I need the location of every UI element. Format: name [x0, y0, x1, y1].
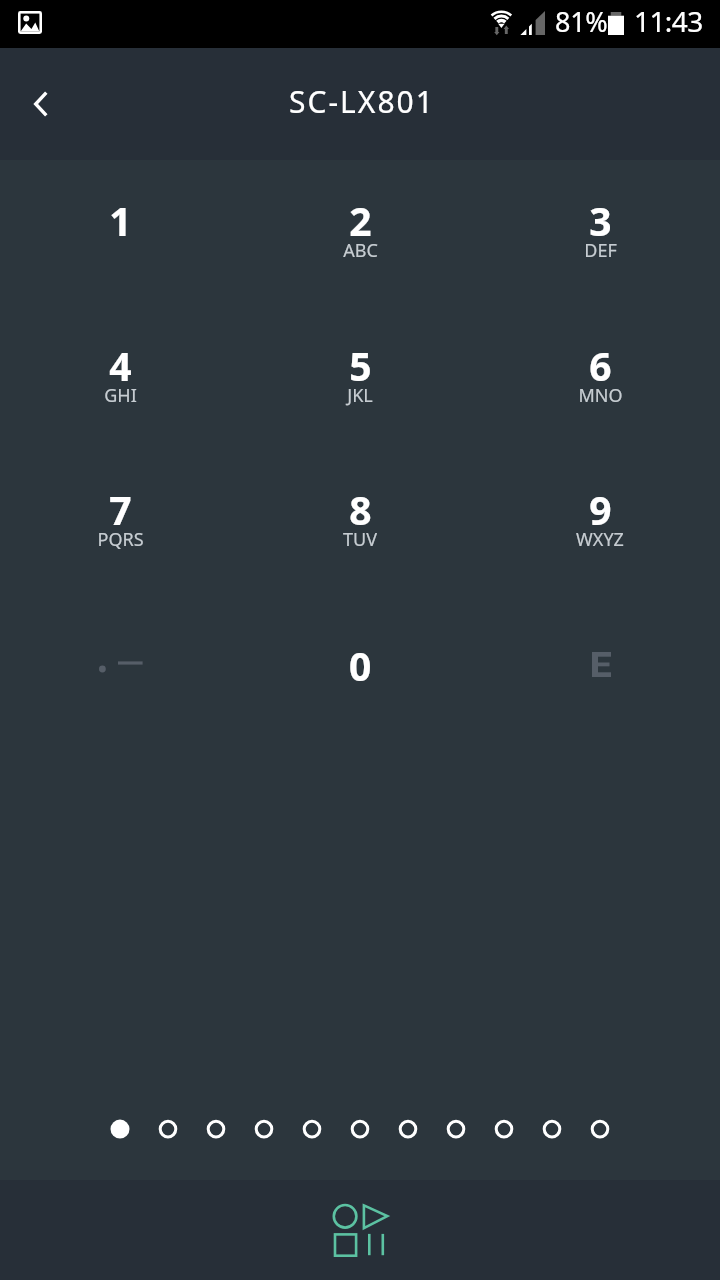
button[interactable]: 4 — [0, 305, 240, 450]
button[interactable]: 8 — [240, 449, 480, 594]
staticText: DEF — [584, 238, 617, 263]
staticText: 4 — [109, 339, 132, 392]
button[interactable]: Back — [8, 48, 72, 160]
staticText: 81% — [555, 3, 608, 40]
button[interactable]: 7 — [0, 449, 240, 594]
staticText: GHI — [104, 383, 137, 408]
staticText: 11:43 — [634, 2, 703, 40]
staticText: 6 — [589, 339, 612, 392]
button[interactable]: 5 — [240, 305, 480, 450]
staticText: 9 — [589, 483, 612, 536]
staticText: JKL — [347, 383, 373, 408]
button[interactable]: 6 — [480, 305, 720, 450]
staticText: TUV — [343, 527, 377, 552]
staticText: SC-LX801 — [289, 81, 435, 122]
staticText: 0 — [349, 639, 372, 692]
staticText: ABC — [343, 238, 378, 263]
button[interactable]: Shapes — [310, 1188, 410, 1272]
button[interactable]: 1 — [0, 160, 240, 305]
button[interactable]: 2 — [240, 160, 480, 305]
staticText: MNO — [578, 383, 623, 408]
staticText: 3 — [589, 194, 612, 247]
staticText: 7 — [109, 483, 132, 536]
staticText: 2 — [349, 194, 372, 247]
staticText: WXYZ — [576, 527, 624, 552]
button[interactable]: 3 — [480, 160, 720, 305]
button[interactable]: E — [480, 594, 720, 739]
button[interactable]: 9 — [480, 449, 720, 594]
button[interactable]: 0 — [240, 594, 480, 739]
staticText: 1 — [109, 194, 132, 247]
staticText: 8 — [349, 483, 372, 536]
staticText: PQRS — [97, 527, 144, 552]
staticText: 5 — [349, 339, 372, 392]
